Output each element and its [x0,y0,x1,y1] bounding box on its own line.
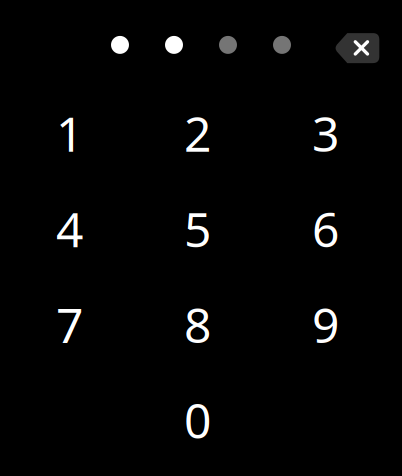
staticText: 4 [56,197,83,260]
staticText: 9 [312,292,339,356]
staticText: 3 [312,101,339,165]
button[interactable]: 1 [5,85,133,181]
staticText: 0 [184,388,211,452]
button[interactable]: 7 [5,276,133,372]
staticText: 5 [184,197,211,260]
button[interactable]: 3 [261,85,389,181]
button[interactable]: 2 [133,85,261,181]
button[interactable]: 8 [133,276,261,372]
button[interactable]: Delete [329,26,385,70]
staticText: 1 [56,101,83,165]
staticText: 7 [56,292,83,356]
button[interactable]: 5 [133,181,261,276]
staticText: 6 [312,197,339,260]
button[interactable]: 9 [261,276,389,372]
button[interactable]: 4 [5,181,133,276]
staticText: 2 [184,101,211,165]
button[interactable]: 0 [133,372,261,468]
button[interactable]: 6 [261,181,389,276]
staticText: 8 [184,292,211,356]
